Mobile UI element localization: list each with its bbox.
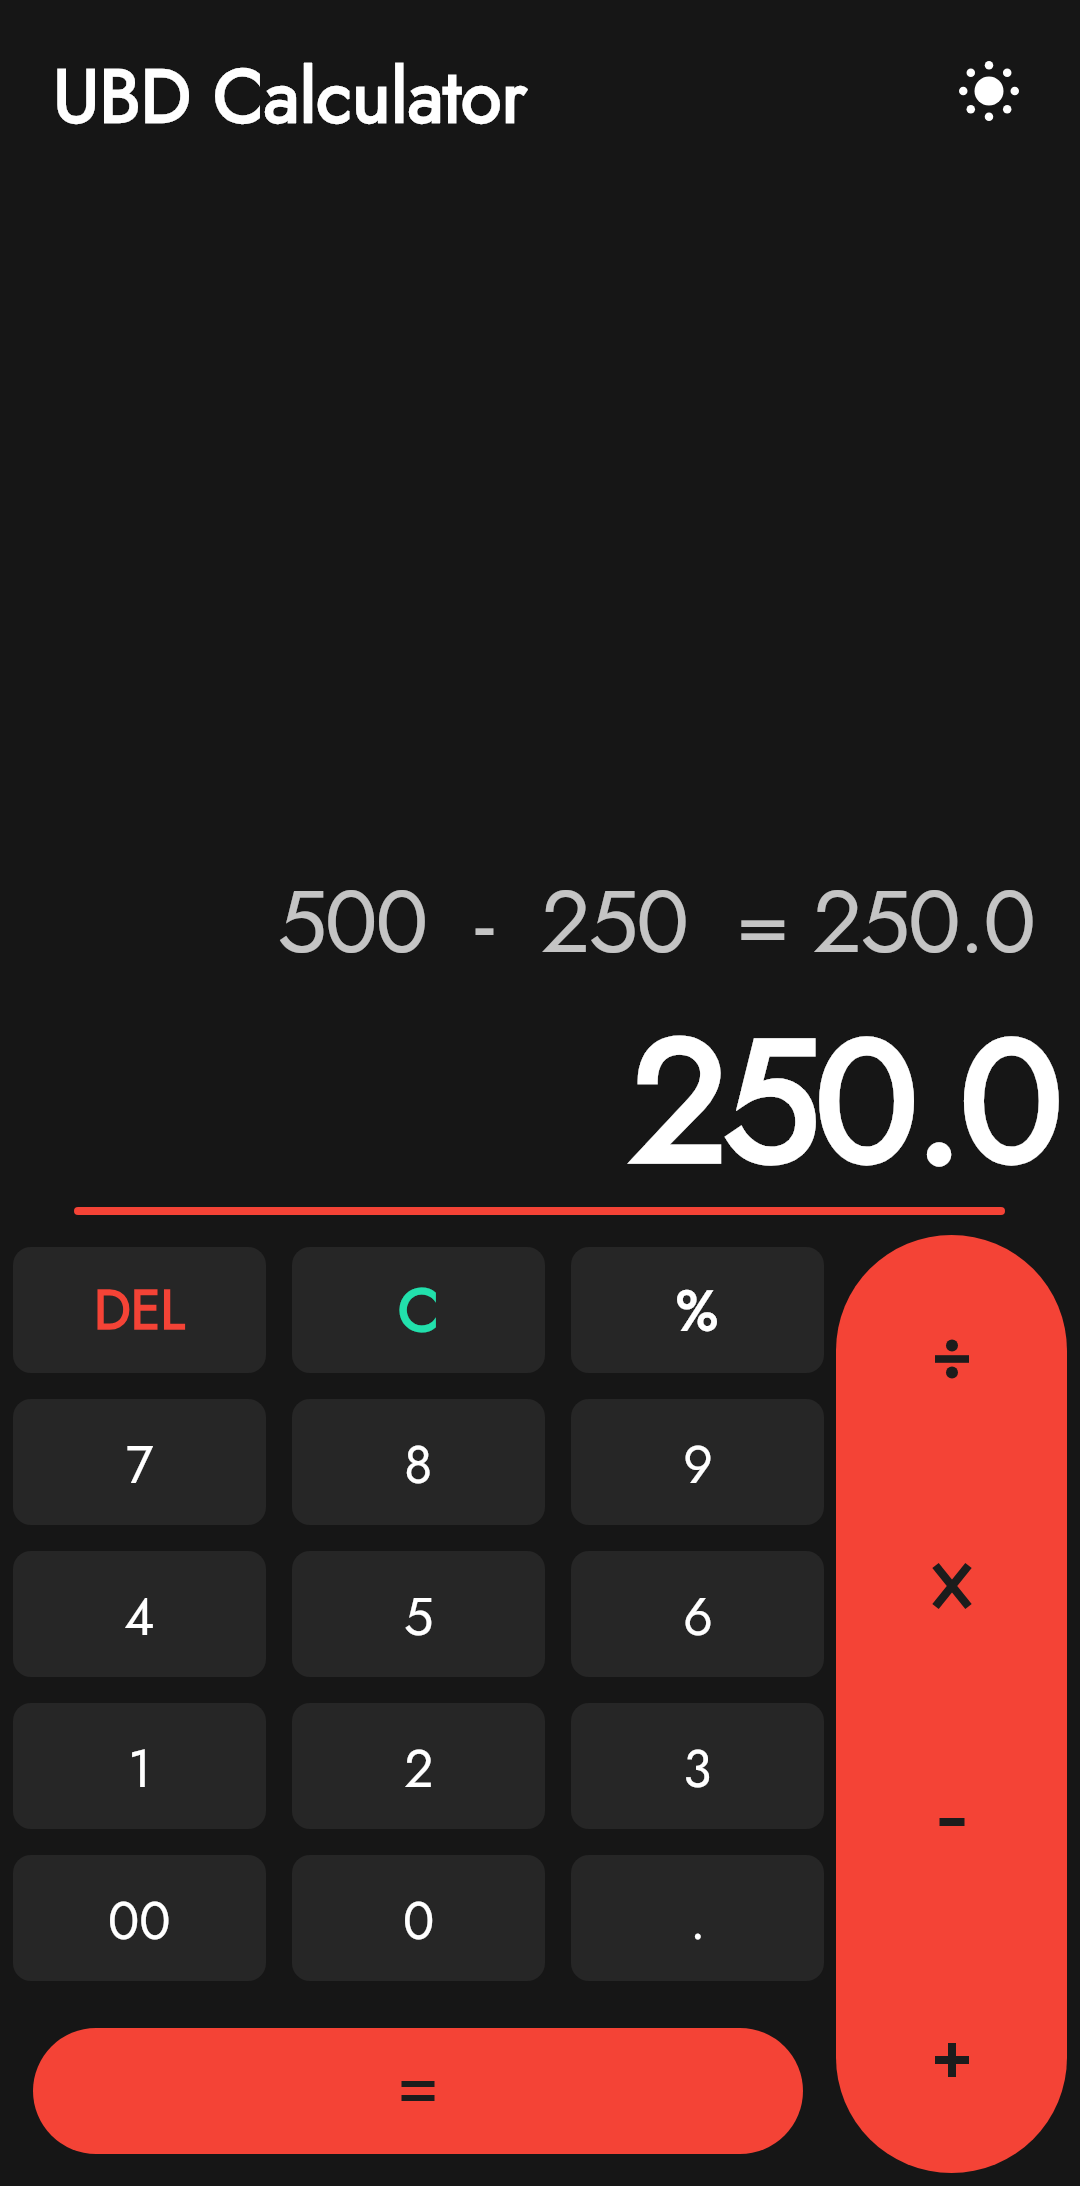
button[interactable]: 3 (571, 1703, 824, 1829)
button[interactable]: equals (33, 2028, 803, 2154)
staticText: 7 (126, 1427, 154, 1502)
staticText: 5 (404, 1579, 434, 1654)
button[interactable]: C (292, 1247, 545, 1373)
staticText: 500 - 250 = 250.0 (0, 858, 1034, 985)
button[interactable]: 0 (292, 1855, 545, 1981)
staticText: 250.0 (0, 977, 1058, 1226)
staticText: UBD Calculator (53, 43, 527, 150)
button[interactable]: DEL (13, 1247, 266, 1373)
button[interactable]: multiply (836, 1469, 1067, 1704)
button[interactable]: 6 (571, 1551, 824, 1677)
staticText: 9 (683, 1427, 713, 1502)
button[interactable]: 5 (292, 1551, 545, 1677)
staticText: 3 (683, 1731, 712, 1806)
button[interactable]: UBD Calculator (53, 43, 527, 150)
button[interactable]: 9 (571, 1399, 824, 1525)
button[interactable]: divide (836, 1235, 1067, 1469)
button[interactable]: Toggle brightness (941, 43, 1037, 139)
button[interactable]: % (571, 1247, 824, 1373)
staticText: 2 (404, 1731, 434, 1806)
button[interactable]: 4 (13, 1551, 266, 1677)
staticText: 1 (128, 1731, 152, 1806)
staticText: 6 (683, 1579, 713, 1654)
button[interactable]: 1 (13, 1703, 266, 1829)
staticText: 00 (108, 1883, 171, 1958)
staticText: . (690, 1883, 706, 1958)
button[interactable]: plus (836, 1939, 1067, 2173)
button[interactable]: 8 (292, 1399, 545, 1525)
staticText: C (398, 1267, 440, 1354)
staticText: 4 (124, 1579, 155, 1654)
button[interactable]: minus (836, 1704, 1067, 1939)
button[interactable]: 00 (13, 1855, 266, 1981)
staticText: % (676, 1270, 719, 1351)
staticText: 0 (403, 1883, 435, 1958)
staticText: 8 (404, 1427, 433, 1502)
button[interactable]: 2 (292, 1703, 545, 1829)
button[interactable]: 7 (13, 1399, 266, 1525)
button[interactable]: . (571, 1855, 824, 1981)
staticText: DEL (94, 1271, 185, 1349)
